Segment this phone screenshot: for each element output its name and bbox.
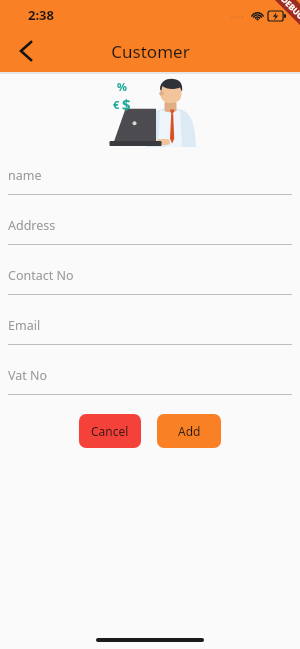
button[interactable]: Contact No: [0, 256, 300, 306]
button[interactable]: Address: [0, 206, 300, 256]
button[interactable]: Email: [0, 306, 300, 356]
button[interactable]: Back: [8, 33, 44, 69]
staticText: $: [122, 94, 131, 114]
button[interactable]: name: [0, 156, 300, 206]
staticText: Vat No: [8, 367, 48, 384]
staticText: Email: [8, 317, 41, 334]
staticText: Add: [178, 423, 201, 439]
button[interactable]: Cancel: [79, 414, 141, 448]
staticText: Customer: [111, 40, 190, 63]
staticText: Cancel: [91, 423, 129, 439]
staticText: %: [117, 79, 127, 94]
button[interactable]: Add: [157, 414, 221, 448]
staticText: Address: [8, 217, 56, 234]
staticText: DEBUG: [279, 0, 300, 21]
staticText: name: [8, 167, 42, 184]
staticText: €: [113, 97, 120, 112]
button[interactable]: Vat No: [0, 356, 300, 406]
staticText: Contact No: [8, 267, 74, 284]
staticText: 2:38: [28, 6, 54, 24]
